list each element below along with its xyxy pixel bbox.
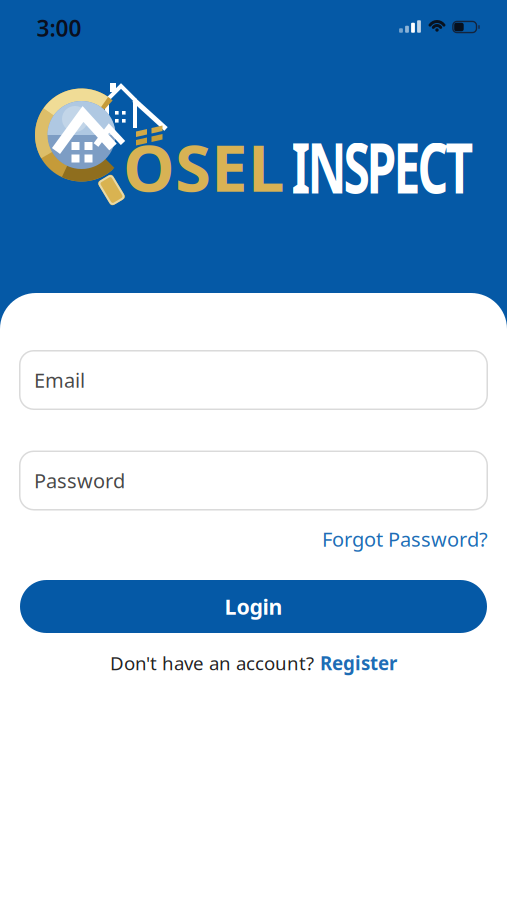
staticText: Email: [34, 367, 85, 393]
staticText: Login: [224, 592, 282, 621]
staticText: Register: [320, 651, 397, 675]
staticText: Don't have an account?: [110, 651, 314, 675]
button[interactable]: Register: [320, 651, 397, 675]
staticText: OSEL: [123, 123, 285, 210]
staticText: Password: [34, 467, 125, 494]
staticText: 3:00: [36, 13, 81, 43]
staticText: Forgot Password?: [322, 526, 488, 552]
button[interactable]: Login: [20, 580, 487, 633]
button[interactable]: Forgot Password?: [322, 526, 488, 552]
staticText: INSPECT: [291, 135, 473, 198]
